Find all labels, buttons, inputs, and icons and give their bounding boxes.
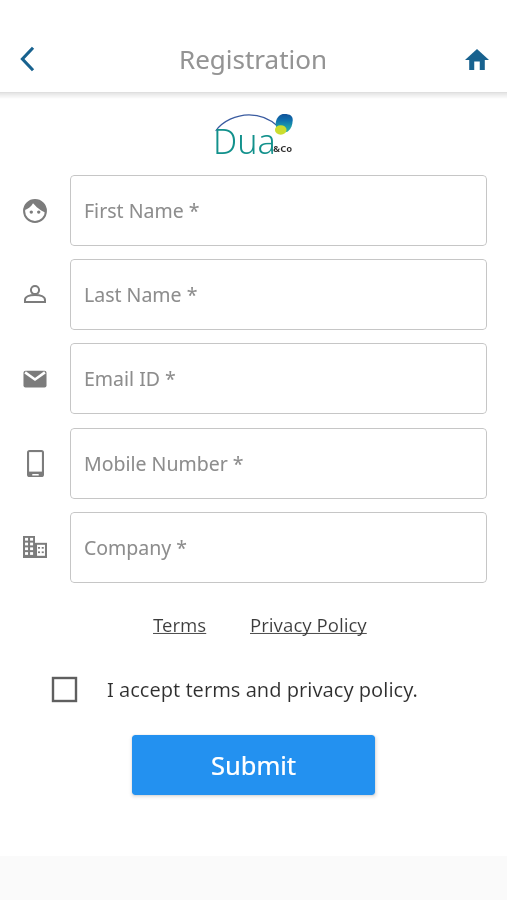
staticText: First Name * [84,197,200,224]
button[interactable]: Email ID * [70,343,487,414]
staticText: &Co [273,142,293,155]
staticText: Mobile Number * [84,450,244,477]
button[interactable]: Home [453,35,501,83]
staticText: Submit [211,748,297,783]
staticText: Terms [153,612,207,637]
staticText: Last Name * [84,281,198,308]
button[interactable]: Terms [145,608,215,641]
button[interactable]: Back [4,35,52,83]
staticText: Email ID * [84,365,176,392]
button[interactable]: Privacy Policy [242,608,375,641]
staticText: Privacy Policy [250,612,367,637]
button[interactable]: Accept terms checkbox [53,678,76,701]
button[interactable]: Mobile Number * [70,428,487,499]
staticText: I accept terms and privacy policy. [107,676,418,703]
button[interactable]: Submit [132,735,375,795]
button[interactable]: First Name * [70,175,487,246]
staticText: Dua [213,118,276,164]
staticText: Company * [84,534,188,561]
button[interactable]: Last Name * [70,259,487,330]
button[interactable]: Company * [70,512,487,583]
staticText: Registration [179,41,328,76]
